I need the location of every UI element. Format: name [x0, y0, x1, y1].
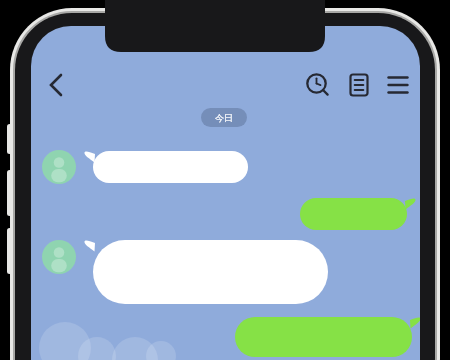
- staticText: 今日: [215, 112, 233, 123]
- button[interactable]: [85, 240, 328, 304]
- button[interactable]: Profile photo: [42, 240, 76, 274]
- button[interactable]: [300, 198, 415, 230]
- button[interactable]: Menu: [377, 64, 419, 106]
- button[interactable]: Notes: [338, 64, 380, 106]
- button[interactable]: Search history: [297, 64, 339, 106]
- button[interactable]: [85, 151, 248, 183]
- button[interactable]: Profile photo: [42, 150, 76, 184]
- button[interactable]: 今日: [201, 108, 247, 127]
- button[interactable]: [235, 317, 420, 357]
- button[interactable]: Back: [35, 64, 77, 106]
